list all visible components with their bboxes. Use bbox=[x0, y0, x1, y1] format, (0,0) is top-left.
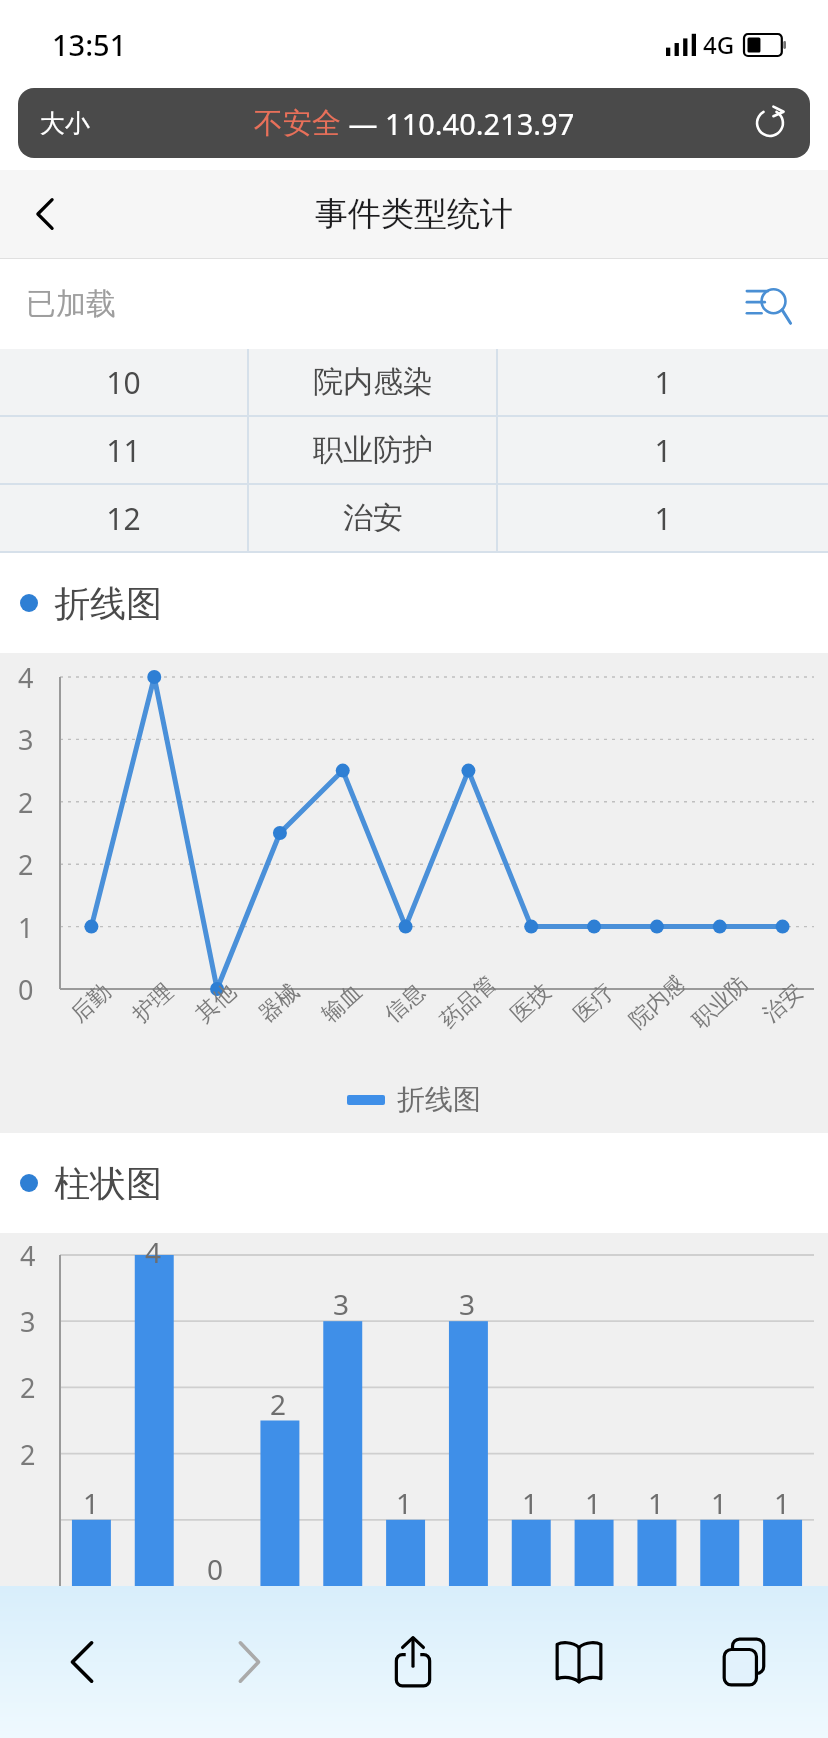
staticText: 1 bbox=[83, 1484, 100, 1522]
staticText: 事件类型统计 bbox=[315, 193, 513, 235]
staticText: 3 bbox=[459, 1285, 476, 1323]
button[interactable]: Back bbox=[0, 1586, 165, 1738]
staticText: 1 bbox=[774, 1484, 791, 1522]
staticText: 器械 bbox=[253, 978, 305, 1028]
staticText: 1 bbox=[648, 1484, 665, 1522]
staticText: 13:51 bbox=[52, 25, 127, 64]
staticText: 2 bbox=[270, 1385, 287, 1423]
staticText: 医技 bbox=[505, 978, 557, 1028]
staticText: 院内感染 bbox=[624, 971, 689, 1034]
staticText: 2 bbox=[20, 1436, 36, 1473]
staticText: 1 bbox=[396, 1484, 413, 1522]
staticText: 治安 bbox=[757, 978, 809, 1028]
staticText: 0 bbox=[207, 1550, 224, 1586]
staticText: 1 bbox=[654, 430, 672, 471]
staticText: 1 bbox=[585, 1484, 602, 1522]
staticText: 4 bbox=[18, 659, 34, 696]
staticText: 已加载 bbox=[26, 285, 116, 323]
staticText: 折线图 bbox=[397, 1082, 481, 1117]
staticText: 3 bbox=[333, 1285, 350, 1323]
staticText: 12 bbox=[106, 498, 141, 539]
staticText: 4 bbox=[145, 1233, 162, 1271]
staticText: 3 bbox=[18, 721, 34, 758]
staticText: 药品管理 bbox=[435, 971, 500, 1034]
button[interactable]: 大小 bbox=[18, 88, 810, 158]
button[interactable]: Forward bbox=[165, 1586, 330, 1738]
staticText: 3 bbox=[20, 1303, 36, 1340]
staticText: — 110.40.213.97 bbox=[341, 104, 575, 143]
staticText: 11 bbox=[106, 430, 141, 471]
button[interactable]: Bookmarks bbox=[496, 1586, 662, 1738]
button[interactable]: Back bbox=[14, 182, 78, 246]
staticText: 其他 bbox=[190, 978, 242, 1028]
staticText: 职业防护 bbox=[313, 431, 433, 469]
staticText: 4G bbox=[703, 28, 735, 61]
staticText: 医疗 bbox=[568, 978, 620, 1028]
button[interactable]: 10 bbox=[0, 349, 828, 415]
button[interactable]: Share bbox=[330, 1586, 496, 1738]
staticText: 2 bbox=[20, 1369, 36, 1406]
button[interactable]: 11 bbox=[0, 417, 828, 483]
staticText: 1 bbox=[18, 909, 34, 946]
staticText: 1 bbox=[654, 498, 672, 539]
staticText: 院内感染 bbox=[313, 363, 433, 401]
staticText: 10 bbox=[106, 362, 141, 403]
staticText: 1 bbox=[522, 1484, 539, 1522]
staticText: 职业防护 bbox=[687, 971, 752, 1034]
staticText: 治安 bbox=[343, 499, 403, 537]
staticText: 折线图 bbox=[54, 581, 162, 626]
staticText: 4 bbox=[20, 1237, 36, 1274]
staticText: 2 bbox=[18, 784, 34, 821]
button[interactable]: Tabs bbox=[662, 1586, 828, 1738]
staticText: 0 bbox=[18, 971, 34, 1008]
staticText: 1 bbox=[711, 1484, 728, 1522]
button[interactable]: 12 bbox=[0, 485, 828, 551]
staticText: 柱状图 bbox=[54, 1161, 162, 1206]
staticText: 不安全 bbox=[254, 105, 341, 142]
staticText: 后勤 bbox=[65, 978, 117, 1028]
staticText: 信息 bbox=[379, 978, 431, 1028]
staticText: 输血 bbox=[316, 978, 368, 1028]
staticText: 2 bbox=[18, 846, 34, 883]
staticText: 护理 bbox=[127, 978, 179, 1028]
button[interactable]: Filter search bbox=[738, 274, 798, 334]
staticText: 1 bbox=[654, 362, 672, 403]
button[interactable]: Reload bbox=[746, 99, 794, 147]
staticText: 大小 bbox=[40, 108, 90, 139]
